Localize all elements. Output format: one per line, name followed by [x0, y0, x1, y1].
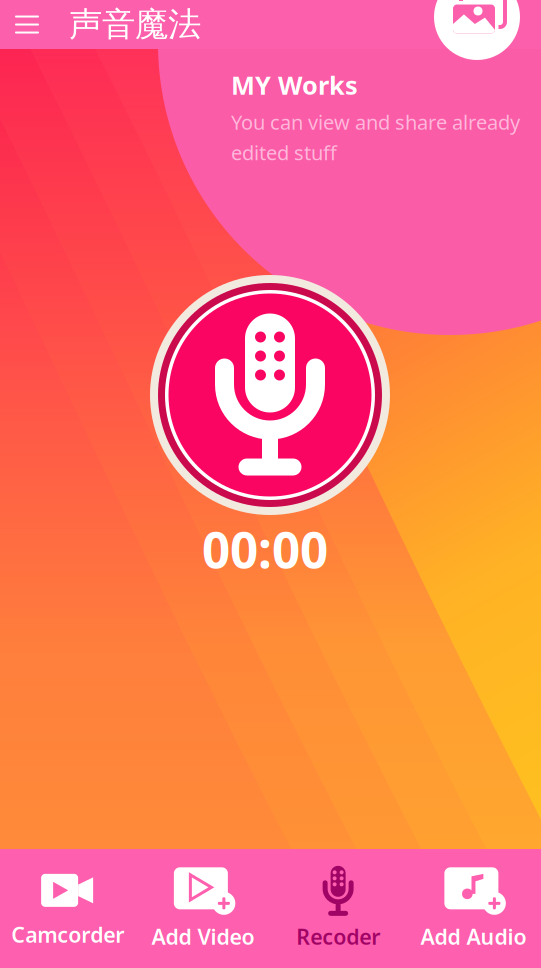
button[interactable]: Gallery — [434, 0, 520, 60]
button[interactable]: Menu — [0, 0, 52, 48]
staticText: edited stuff — [231, 139, 337, 166]
button[interactable]: Add Audio — [406, 852, 541, 965]
button[interactable]: Recoder — [270, 852, 406, 965]
button[interactable]: Record — [150, 275, 390, 515]
button[interactable]: Add Video — [135, 852, 270, 965]
staticText: MY Works — [231, 68, 358, 102]
button[interactable]: Camcorder — [0, 854, 135, 963]
staticText: Recoder — [296, 922, 380, 951]
staticText: You can view and share already — [231, 109, 520, 135]
staticText: 声音魔法 — [69, 4, 201, 45]
staticText: Add Audio — [420, 922, 526, 951]
staticText: Add Video — [151, 922, 254, 951]
staticText: Camcorder — [11, 920, 124, 949]
staticText: 00:00 — [202, 516, 328, 582]
